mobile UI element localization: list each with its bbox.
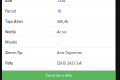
staticText: - bbox=[57, 39, 58, 45]
staticText: Arsa bbox=[57, 29, 66, 34]
staticText: I24-B-24-D-3-A bbox=[57, 60, 82, 65]
staticText: Zemin Tip bbox=[5, 50, 22, 55]
staticText: Nitelik bbox=[5, 29, 16, 34]
button[interactable]: Favorilere ekle bbox=[2, 70, 115, 80]
staticText: Favorilere ekle bbox=[46, 73, 72, 78]
staticText: Mevkii bbox=[5, 39, 17, 45]
staticText: 446,46 bbox=[57, 19, 68, 24]
staticText: Pafta bbox=[5, 60, 13, 65]
staticText: Ana Taşınmaz bbox=[57, 50, 82, 55]
staticText: 18 bbox=[57, 8, 61, 13]
staticText: Tapu Alanı bbox=[5, 19, 23, 24]
staticText: Ada bbox=[5, 0, 12, 3]
staticText: 1234 bbox=[57, 0, 65, 3]
staticText: Parsel bbox=[5, 8, 16, 13]
